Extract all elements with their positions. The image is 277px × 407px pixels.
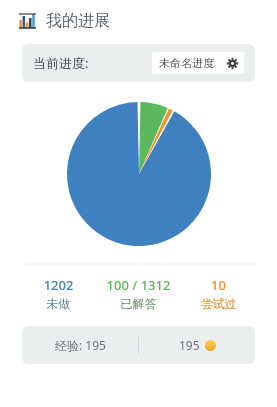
button[interactable]: 100 / 1312 bbox=[95, 276, 182, 311]
button[interactable]: 经验: 195 bbox=[22, 326, 255, 364]
staticText: 已解答 bbox=[95, 296, 182, 311]
staticText: 当前进度: bbox=[33, 54, 89, 72]
staticText: 未做 bbox=[22, 296, 95, 311]
staticText: 未命名进度 bbox=[159, 56, 214, 70]
staticText: 尝试过 bbox=[182, 296, 255, 311]
button[interactable]: 我的进展 bbox=[19, 11, 277, 31]
button[interactable]: 1202 bbox=[22, 276, 95, 311]
staticText: 10 bbox=[182, 276, 255, 294]
staticText: 1202 bbox=[22, 276, 95, 294]
staticText: 100 / 1312 bbox=[95, 276, 182, 294]
button[interactable]: 设置 bbox=[221, 52, 244, 74]
button[interactable]: 未命名进度 bbox=[159, 52, 214, 74]
staticText: 我的进展 bbox=[46, 11, 110, 31]
staticText: 195 bbox=[179, 337, 200, 353]
button[interactable]: 10 bbox=[182, 276, 255, 311]
staticText: 经验: 195 bbox=[55, 337, 106, 353]
